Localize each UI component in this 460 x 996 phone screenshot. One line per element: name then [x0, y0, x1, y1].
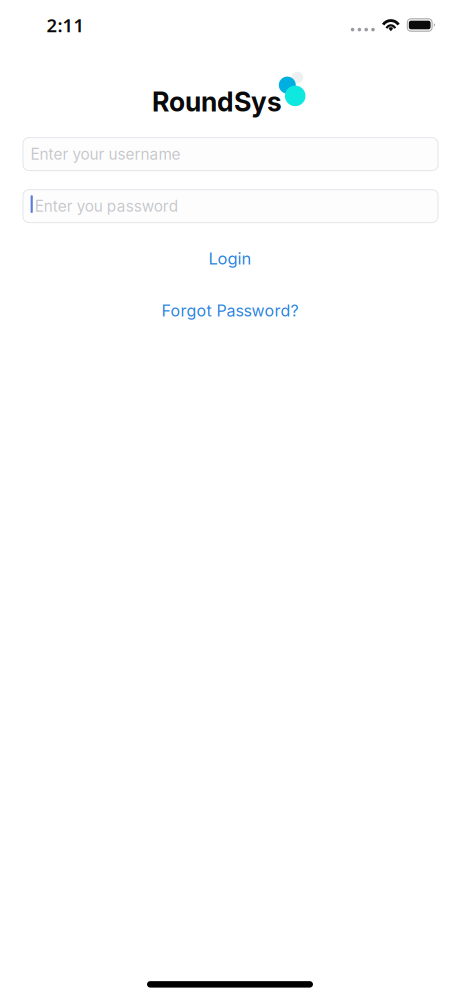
staticText: Forgot Password? [161, 301, 298, 320]
textField[interactable]: Enter you password [23, 190, 438, 223]
button[interactable]: Enter your username [23, 138, 438, 171]
textField[interactable]: Enter your username [23, 138, 438, 171]
staticText: Enter you password [35, 197, 178, 215]
button[interactable]: Forgot Password? [0, 300, 460, 322]
button[interactable]: Enter you password [23, 190, 438, 223]
staticText: Enter your username [31, 145, 181, 163]
staticText: 2:11 [47, 12, 85, 38]
staticText: RoundSys [152, 86, 282, 118]
button[interactable]: Login [0, 248, 460, 270]
staticText: Login [208, 249, 251, 269]
